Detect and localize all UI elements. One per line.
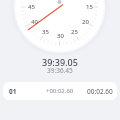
staticText: 39:36.45 xyxy=(47,66,73,75)
staticText: 45 xyxy=(28,3,35,11)
staticText: 01 xyxy=(9,87,17,96)
staticText: 30 xyxy=(57,32,64,40)
button[interactable]: 01 xyxy=(3,82,117,100)
staticText: 35 xyxy=(42,28,49,36)
staticText: 00:02.60 xyxy=(87,87,113,96)
staticText: 20 xyxy=(82,18,89,26)
staticText: 39:39.05 xyxy=(42,56,78,68)
staticText: +00:02.60 xyxy=(46,87,74,95)
staticText: 25 xyxy=(71,28,78,36)
staticText: 40 xyxy=(31,18,38,26)
staticText: 15 xyxy=(86,3,93,11)
